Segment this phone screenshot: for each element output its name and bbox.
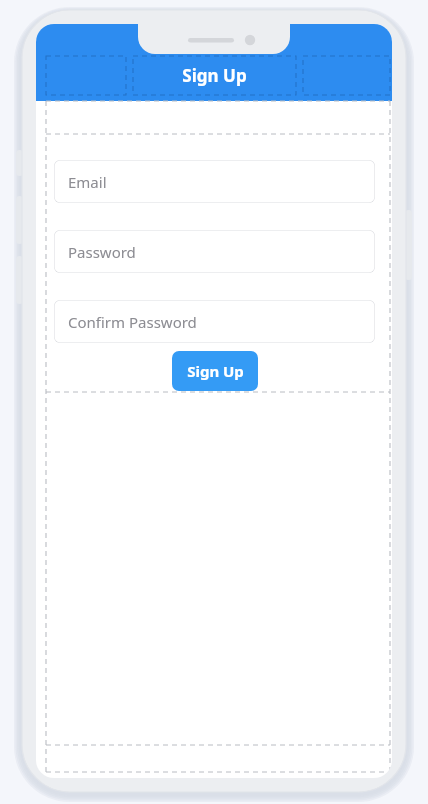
staticText: Sign Up bbox=[187, 361, 244, 381]
button[interactable]: Email bbox=[54, 160, 375, 203]
button[interactable]: Confirm Password bbox=[54, 300, 375, 343]
staticText: Password bbox=[68, 242, 136, 262]
staticText: Sign Up bbox=[182, 64, 247, 87]
button[interactable]: Password bbox=[54, 230, 375, 273]
staticText: Confirm Password bbox=[68, 312, 197, 332]
staticText: Email bbox=[68, 172, 107, 192]
button[interactable]: Sign Up bbox=[133, 56, 296, 95]
button[interactable]: Sign Up bbox=[172, 351, 258, 391]
